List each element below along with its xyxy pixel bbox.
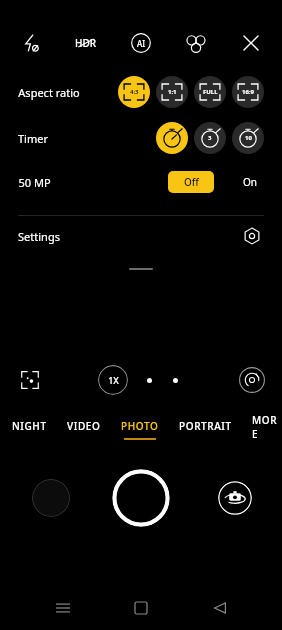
staticText: 10	[245, 134, 252, 142]
button[interactable]: Aspect ratio full	[194, 76, 226, 108]
staticText: Timer	[18, 131, 48, 146]
button[interactable]: Off	[168, 171, 214, 193]
staticText: VIDEO	[67, 419, 101, 433]
staticText: MORE	[252, 413, 280, 441]
staticText: AI	[137, 38, 146, 49]
button[interactable]: On	[236, 171, 264, 193]
staticText: FULL	[203, 88, 218, 96]
staticText: 1:1	[168, 88, 177, 96]
button[interactable]: Zoom 5x	[166, 371, 184, 389]
button[interactable]: Timer 3 seconds	[194, 122, 226, 154]
staticText: 4:3	[130, 88, 139, 96]
button[interactable]: PORTRAIT	[177, 415, 234, 444]
button[interactable]: Filters	[179, 26, 213, 60]
staticText: 3	[208, 134, 212, 142]
button[interactable]: NIGHT	[10, 415, 49, 444]
button[interactable]: MORE	[250, 409, 282, 449]
button[interactable]: Settings	[18, 216, 264, 256]
button[interactable]: Zoom 2x	[140, 371, 158, 389]
button[interactable]: Timer off	[156, 122, 188, 154]
button[interactable]: Aspect ratio 16 by 9	[232, 76, 264, 108]
button[interactable]: Timer 10 seconds	[232, 122, 264, 154]
staticText: 1X	[108, 374, 119, 386]
button[interactable]: Switch camera	[218, 481, 252, 515]
button[interactable]: Recents	[47, 592, 79, 624]
button[interactable]: AI scene detection	[124, 26, 158, 60]
staticText: 50 MP	[18, 175, 51, 190]
button[interactable]: VIDEO	[65, 415, 103, 444]
button[interactable]: Scene detect	[16, 366, 44, 394]
button[interactable]: Shutter	[112, 469, 170, 527]
button[interactable]: Aspect ratio 1 by 1	[156, 76, 188, 108]
button[interactable]: PHOTO	[119, 415, 161, 444]
button[interactable]: Macro lens	[238, 366, 266, 394]
button[interactable]: Aspect ratio 4 by 3	[118, 76, 150, 108]
button[interactable]: 1X	[98, 365, 128, 395]
button[interactable]: Home	[125, 592, 157, 624]
button[interactable]: Close	[234, 26, 268, 60]
button[interactable]: Back	[204, 592, 236, 624]
staticText: PHOTO	[121, 419, 159, 433]
button[interactable]: HDR off	[69, 26, 103, 60]
staticText: Off	[184, 175, 199, 189]
staticText: PORTRAIT	[179, 419, 232, 433]
staticText: 16:9	[242, 88, 254, 96]
button[interactable]: Flash off	[14, 26, 48, 60]
staticText: Settings	[18, 229, 60, 244]
staticText: NIGHT	[12, 419, 47, 433]
button[interactable]: Gallery	[32, 479, 70, 517]
staticText: Aspect ratio	[18, 85, 80, 100]
staticText: HDR	[75, 36, 97, 50]
staticText: On	[243, 175, 257, 189]
